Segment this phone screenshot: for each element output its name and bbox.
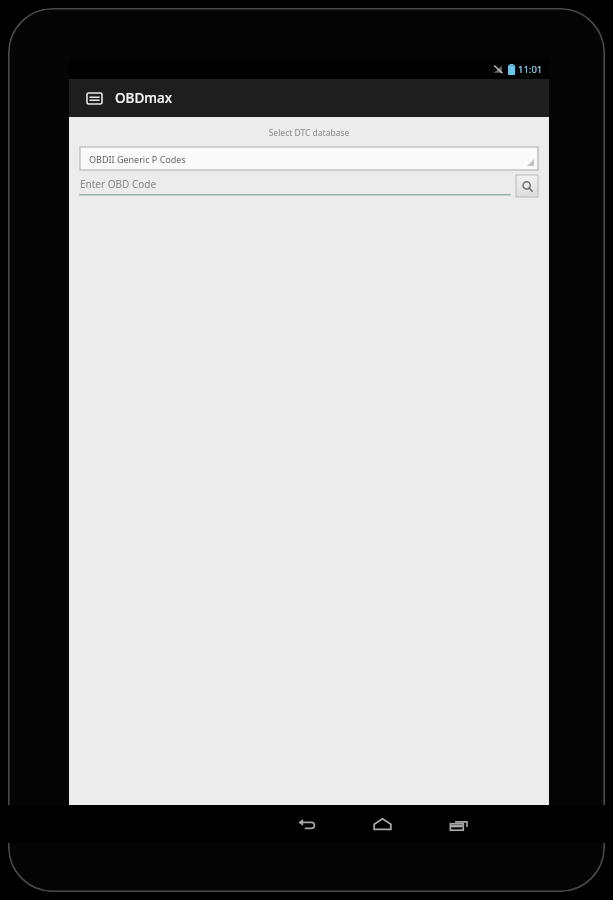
button[interactable]: Recent apps bbox=[435, 806, 481, 842]
button[interactable]: Enter OBD Code bbox=[80, 175, 510, 197]
staticText: OBDII Generic P Codes bbox=[89, 153, 186, 165]
button[interactable]: OBDII Generic P Codes bbox=[80, 147, 538, 170]
staticText: Select DTC database bbox=[69, 127, 549, 139]
button[interactable]: Open navigation drawer bbox=[81, 85, 107, 111]
button[interactable]: Home bbox=[359, 806, 405, 842]
staticText: Enter OBD Code bbox=[80, 177, 157, 191]
staticText: 11:01 bbox=[518, 63, 543, 76]
staticText: OBDmax bbox=[115, 89, 173, 107]
button[interactable]: Back bbox=[283, 806, 329, 842]
button[interactable]: Search bbox=[516, 175, 538, 197]
